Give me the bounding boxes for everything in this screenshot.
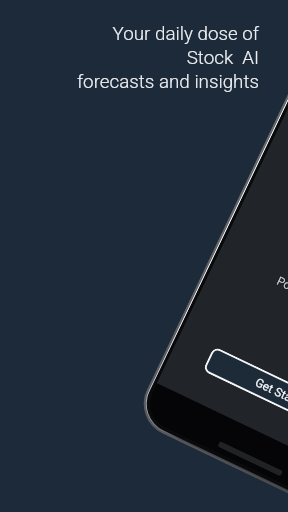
button[interactable]: Get Started xyxy=(202,346,288,440)
staticText: Your daily dose of Stock AI forecasts an… xyxy=(12,23,259,93)
staticText: Powered by AI analysis xyxy=(275,274,288,339)
staticText: Get Started xyxy=(253,375,288,414)
